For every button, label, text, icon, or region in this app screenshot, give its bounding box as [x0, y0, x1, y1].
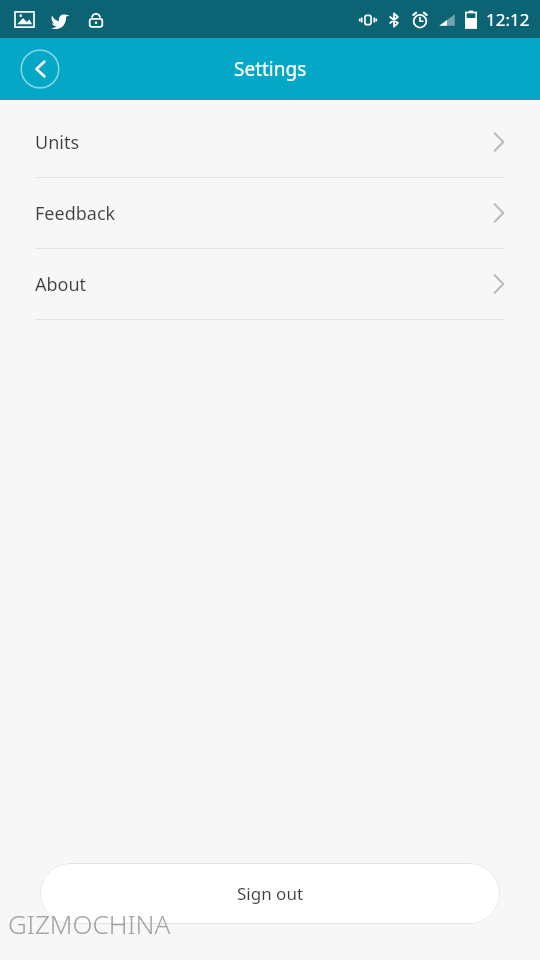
- staticText: Sign out: [237, 882, 304, 905]
- staticText: Settings: [234, 56, 307, 82]
- button[interactable]: About: [0, 249, 540, 319]
- staticText: Units: [35, 130, 80, 155]
- button[interactable]: Feedback: [0, 178, 540, 248]
- staticText: 12:12: [486, 8, 530, 31]
- staticText: About: [35, 272, 87, 297]
- button[interactable]: Back: [20, 49, 60, 89]
- button[interactable]: Sign out: [40, 863, 500, 924]
- button[interactable]: Units: [0, 107, 540, 177]
- staticText: Feedback: [35, 201, 116, 226]
- staticText: GIZMOCHINA: [8, 906, 171, 941]
